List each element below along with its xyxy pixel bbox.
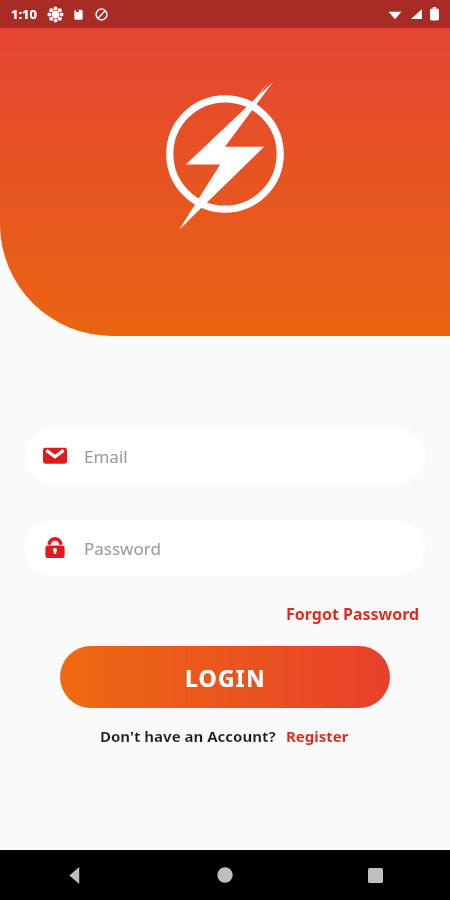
- staticText: Password: [84, 537, 161, 560]
- button[interactable]: Register: [284, 724, 351, 748]
- staticText: Don't have an Account?: [100, 726, 276, 746]
- staticText: Forgot Password: [286, 603, 420, 625]
- button[interactable]: Back: [0, 850, 150, 900]
- staticText: 1:10: [11, 5, 37, 23]
- staticText: LOGIN: [185, 662, 266, 693]
- staticText: Email: [84, 445, 128, 468]
- button[interactable]: Password: [25, 520, 425, 576]
- button[interactable]: Forgot Password: [284, 600, 422, 628]
- button[interactable]: Email: [25, 428, 425, 484]
- button[interactable]: Home: [150, 850, 300, 900]
- button[interactable]: Recent apps: [300, 850, 450, 900]
- staticText: Register: [286, 726, 349, 746]
- other: App logo: [145, 74, 305, 234]
- button[interactable]: LOGIN: [60, 646, 390, 708]
